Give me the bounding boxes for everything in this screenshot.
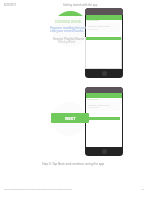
staticText: Recent Playlist Name: [53, 37, 85, 41]
staticText: Getting started with the app: [63, 3, 98, 7]
staticText: Step 5: Tap Next and continue using the …: [42, 162, 105, 166]
button[interactable]: NEXT: [51, 113, 89, 123]
staticText: CONTINUE: [87, 19, 99, 22]
staticText: 1/3: [141, 188, 145, 191]
staticText: CONTINUE WHERE: [55, 20, 82, 24]
staticText: Resume reading list and: [50, 26, 87, 30]
staticText: edit your recent books: [50, 29, 84, 33]
staticText: NEXT: [65, 116, 76, 121]
staticText: Song title: [88, 106, 99, 109]
staticText: Playlist name here: [88, 24, 110, 27]
staticText: CONTINUE: [87, 98, 99, 101]
staticText: 8/29/2017: [4, 3, 17, 7]
staticText: https://www.example.com/tutorials/gettin…: [4, 188, 72, 191]
staticText: Song title: [88, 28, 99, 31]
staticText: Playlist name here: [88, 103, 110, 106]
staticText: Title by Artist: [58, 40, 76, 44]
